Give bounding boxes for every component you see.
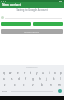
button[interactable]: Enter [56, 88, 64, 94]
button[interactable]: u [40, 70, 46, 76]
button[interactable]: New contact [0, 2, 64, 8]
button[interactable]: Space [8, 88, 56, 94]
button[interactable]: t [28, 70, 34, 76]
button[interactable]: o [52, 70, 58, 76]
button[interactable] [1, 22, 31, 26]
button[interactable]: l [57, 76, 64, 82]
staticText: s [11, 77, 13, 81]
staticText: a [3, 77, 5, 81]
button[interactable]: f [22, 76, 29, 82]
staticText: c [23, 83, 25, 87]
button[interactable]: MORE FIELDS [1, 29, 63, 34]
button[interactable]: h [36, 76, 43, 82]
button[interactable]: a [0, 76, 8, 82]
button[interactable]: i [46, 70, 52, 76]
staticText: Saving to Google Account [16, 8, 48, 12]
staticText: j [46, 77, 47, 81]
staticText: e [17, 71, 19, 75]
button[interactable]: e [14, 70, 21, 76]
staticText: y [36, 71, 38, 75]
staticText: suggestion [26, 66, 38, 69]
button[interactable] [33, 22, 63, 26]
staticText: b [41, 83, 43, 87]
button[interactable]: r [21, 70, 28, 76]
button[interactable]: q [0, 70, 7, 76]
button[interactable]: s [8, 76, 15, 82]
button[interactable]: w [7, 70, 14, 76]
button[interactable] [0, 12, 64, 19]
staticText: g [32, 77, 34, 81]
staticText: k [53, 77, 55, 81]
staticText: z [4, 83, 6, 87]
staticText: New contact [2, 3, 21, 7]
staticText: m [58, 83, 61, 87]
button[interactable]: m [55, 82, 64, 88]
staticText: v [32, 83, 34, 87]
button[interactable]: Symbols [0, 88, 8, 94]
staticText: i [49, 71, 50, 75]
staticText: r [24, 71, 26, 75]
staticText: t [30, 71, 32, 75]
staticText: ?123 [2, 90, 7, 93]
button[interactable]: x [10, 82, 19, 88]
button[interactable]: d [15, 76, 22, 82]
button[interactable]: p [58, 70, 64, 76]
button[interactable]: b [37, 82, 46, 88]
staticText: l [60, 77, 61, 81]
staticText: h [39, 77, 41, 81]
button[interactable]: v [28, 82, 37, 88]
button[interactable]: z [0, 82, 10, 88]
staticText: n [50, 83, 52, 87]
staticText: f [25, 77, 27, 81]
staticText: u [42, 71, 44, 75]
button[interactable]: k [50, 76, 57, 82]
button[interactable]: y [34, 70, 40, 76]
staticText: x [14, 83, 16, 87]
button[interactable]: n [46, 82, 55, 88]
staticText: o [54, 71, 56, 75]
button[interactable]: g [29, 76, 36, 82]
staticText: MORE FIELDS [24, 30, 40, 33]
staticText: p [60, 71, 62, 75]
staticText: w [9, 71, 12, 75]
staticText: d [18, 77, 20, 81]
staticText: q [3, 71, 5, 75]
button[interactable]: j [43, 76, 50, 82]
button[interactable]: c [19, 82, 28, 88]
